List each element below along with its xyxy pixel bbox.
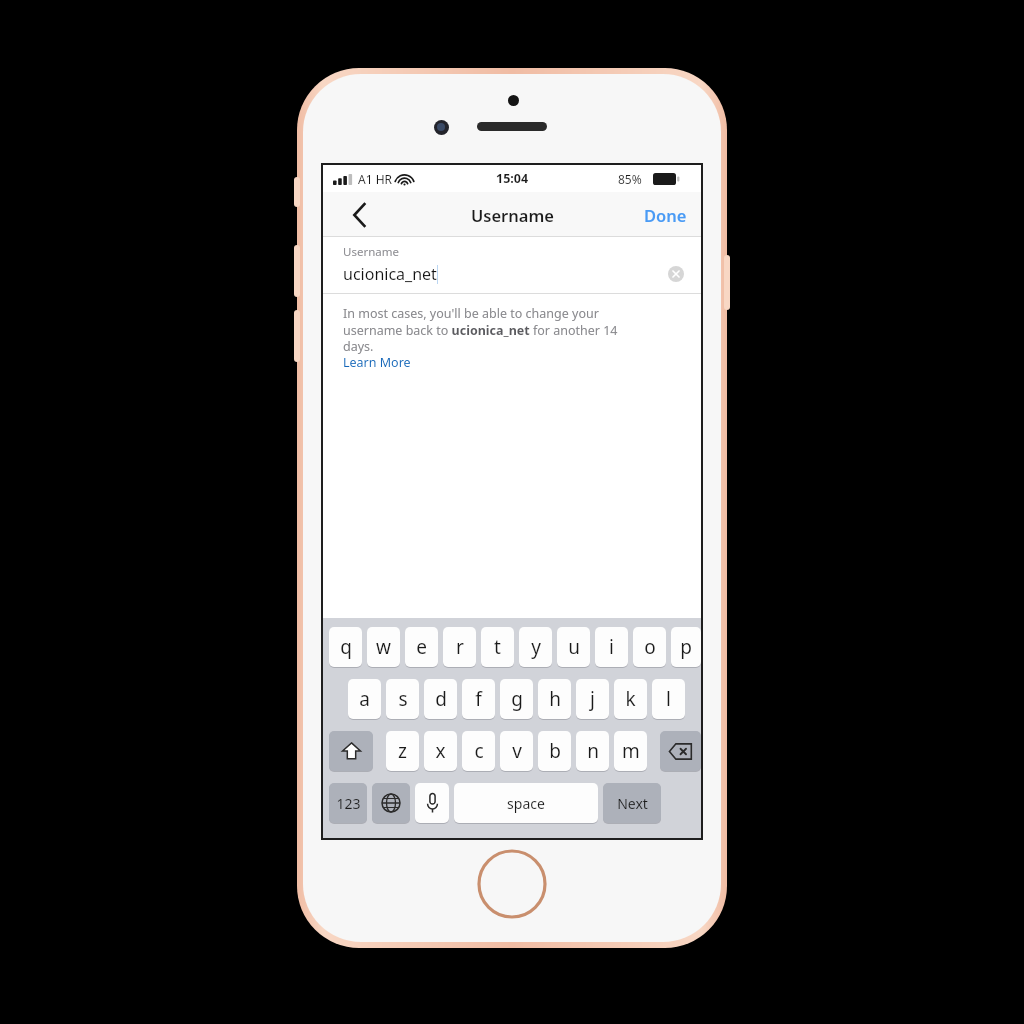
staticText: x: [435, 738, 446, 764]
button[interactable]: g: [500, 679, 533, 719]
staticText: 15:04: [496, 170, 529, 187]
button[interactable]: t: [481, 627, 514, 667]
staticText: d: [435, 686, 447, 712]
staticText: Next: [617, 794, 648, 813]
staticText: l: [666, 686, 671, 712]
staticText: Learn More: [343, 354, 411, 371]
button[interactable]: a: [348, 679, 381, 719]
button[interactable]: x: [424, 731, 457, 771]
staticText: j: [590, 686, 595, 712]
staticText: h: [549, 686, 561, 712]
staticText: f: [475, 686, 482, 712]
staticText: Username: [343, 244, 399, 260]
button[interactable]: n: [576, 731, 609, 771]
button[interactable]: Switch keyboard: [372, 783, 410, 823]
button[interactable]: h: [538, 679, 571, 719]
button[interactable]: r: [443, 627, 476, 667]
button[interactable]: j: [576, 679, 609, 719]
button[interactable]: u: [557, 627, 590, 667]
button[interactable]: w: [367, 627, 400, 667]
staticText: o: [644, 634, 656, 660]
staticText: b: [549, 738, 561, 764]
button[interactable]: i: [595, 627, 628, 667]
staticText: c: [474, 738, 484, 764]
staticText: 123: [336, 794, 361, 813]
staticText: y: [531, 634, 541, 660]
button[interactable]: s: [386, 679, 419, 719]
staticText: t: [494, 634, 501, 660]
staticText: Username: [471, 204, 554, 226]
staticText: ucionica_net: [343, 263, 437, 285]
button[interactable]: f: [462, 679, 495, 719]
staticText: u: [568, 634, 580, 660]
staticText: k: [625, 686, 636, 712]
staticText: q: [340, 634, 352, 660]
staticText: Done: [644, 204, 687, 226]
button[interactable]: Next: [603, 783, 661, 823]
button[interactable]: p: [671, 627, 701, 667]
staticText: a: [359, 686, 370, 712]
button[interactable]: c: [462, 731, 495, 771]
staticText: w: [376, 634, 391, 660]
staticText: A1 HR: [358, 171, 393, 187]
staticText: n: [587, 738, 599, 764]
staticText: In most cases, you'll be able to change …: [343, 305, 643, 354]
button[interactable]: Back: [329, 192, 389, 237]
button[interactable]: v: [500, 731, 533, 771]
staticText: s: [398, 686, 408, 712]
staticText: g: [511, 686, 523, 712]
button[interactable]: y: [519, 627, 552, 667]
button[interactable]: Done: [630, 192, 701, 237]
button[interactable]: Backspace: [660, 731, 701, 771]
staticText: 85%: [618, 171, 642, 187]
button[interactable]: z: [386, 731, 419, 771]
button[interactable]: k: [614, 679, 647, 719]
button[interactable]: b: [538, 731, 571, 771]
button[interactable]: Clear text: [661, 259, 691, 289]
staticText: r: [456, 634, 464, 660]
staticText: space: [507, 794, 545, 813]
button[interactable]: Dictate: [415, 783, 449, 823]
button[interactable]: space: [454, 783, 598, 823]
staticText: i: [609, 634, 614, 660]
button[interactable]: l: [652, 679, 685, 719]
staticText: v: [512, 738, 522, 764]
button[interactable]: m: [614, 731, 647, 771]
button[interactable]: e: [405, 627, 438, 667]
staticText: p: [680, 634, 692, 660]
button[interactable]: 123: [329, 783, 367, 823]
button[interactable]: Learn More: [343, 354, 411, 371]
staticText: e: [416, 634, 427, 660]
staticText: z: [398, 738, 407, 764]
staticText: m: [622, 738, 640, 764]
button[interactable]: d: [424, 679, 457, 719]
button[interactable]: q: [329, 627, 362, 667]
button[interactable]: Shift: [329, 731, 373, 771]
button[interactable]: o: [633, 627, 666, 667]
